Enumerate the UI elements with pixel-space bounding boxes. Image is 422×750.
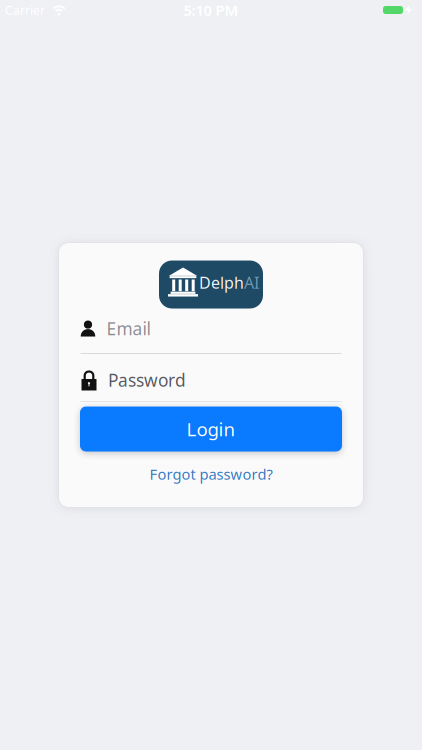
staticText: AI [244,272,259,293]
staticText: Carrier [5,2,45,18]
button[interactable]: Forgot password? [58,463,363,485]
button[interactable]: Password [81,369,342,390]
staticText: Login [186,417,235,441]
staticText: Forgot password? [149,464,272,484]
staticText: Delph [199,272,244,293]
staticText: Password [108,368,186,391]
button[interactable]: Email [80,317,341,339]
staticText: Email [106,317,150,340]
button[interactable]: Login [80,406,342,451]
staticText: 5:10 PM [183,0,238,20]
